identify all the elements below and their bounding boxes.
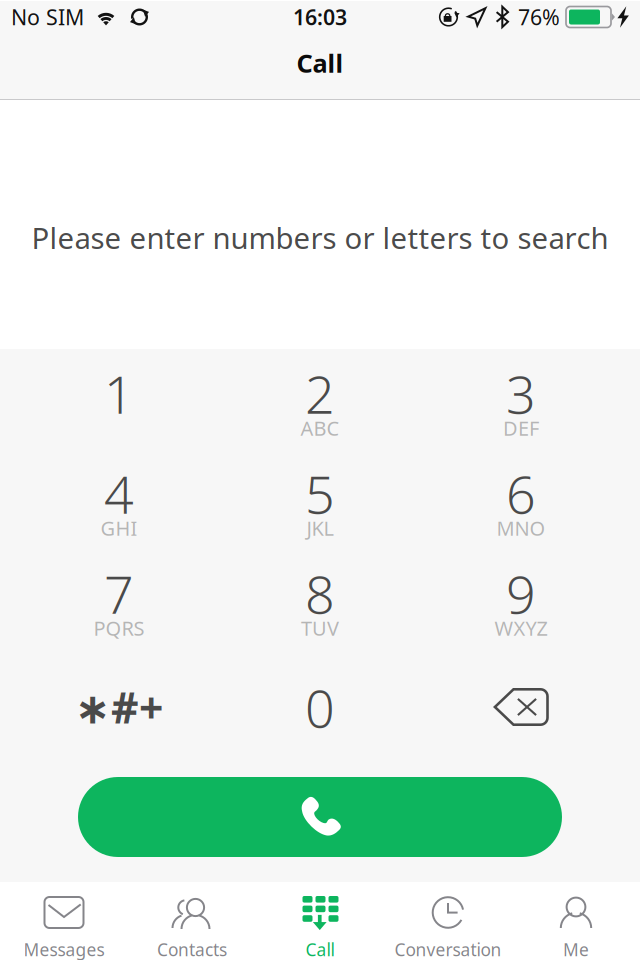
staticText: Please enter numbers or letters to searc… — [31, 218, 608, 257]
staticText: Contacts — [157, 938, 227, 960]
staticText: JKL — [306, 515, 333, 541]
staticText: 3 — [506, 359, 536, 428]
staticText: ABC — [300, 415, 339, 441]
staticText: 16:03 — [293, 3, 347, 31]
staticText: MNO — [496, 515, 545, 541]
button[interactable]: Conversation — [384, 884, 512, 959]
staticText: 4 — [104, 459, 134, 528]
button[interactable]: Me — [512, 884, 640, 959]
button[interactable]: 8 — [253, 562, 387, 658]
button[interactable]: 9 — [454, 562, 588, 658]
staticText: No SIM — [11, 3, 84, 31]
button[interactable]: 0 — [253, 672, 387, 768]
button[interactable]: Call — [78, 777, 562, 857]
button[interactable]: 6 — [454, 462, 588, 558]
button[interactable]: Contacts — [128, 884, 256, 959]
staticText: 2 — [305, 359, 335, 428]
button[interactable]: Delete — [454, 672, 588, 768]
staticText: ∗#+ — [75, 679, 163, 735]
staticText: 8 — [305, 559, 335, 628]
staticText: DEF — [503, 415, 539, 441]
staticText: 9 — [506, 559, 536, 628]
button[interactable]: Call — [256, 884, 384, 959]
staticText: Conversation — [394, 938, 501, 960]
staticText: 6 — [506, 459, 536, 528]
button[interactable]: 7 — [52, 562, 186, 658]
button[interactable]: 1 — [52, 362, 186, 458]
staticText: TUV — [301, 615, 339, 641]
staticText: Me — [563, 938, 589, 960]
staticText: 5 — [305, 459, 335, 528]
staticText: 0 — [305, 673, 335, 742]
staticText: PQRS — [93, 615, 144, 641]
staticText: Call — [296, 46, 343, 80]
staticText: 7 — [104, 559, 134, 628]
button[interactable]: 5 — [253, 462, 387, 558]
staticText: 1 — [104, 359, 134, 428]
staticText: GHI — [100, 515, 137, 541]
staticText: Messages — [23, 938, 104, 960]
button[interactable]: 2 — [253, 362, 387, 458]
button[interactable]: 4 — [52, 462, 186, 558]
staticText: WXYZ — [494, 615, 547, 641]
button[interactable]: 3 — [454, 362, 588, 458]
staticText: Call — [305, 938, 334, 960]
button[interactable]: ∗#+ — [52, 672, 186, 768]
staticText: 76% — [518, 3, 560, 31]
button[interactable]: Messages — [0, 884, 128, 959]
